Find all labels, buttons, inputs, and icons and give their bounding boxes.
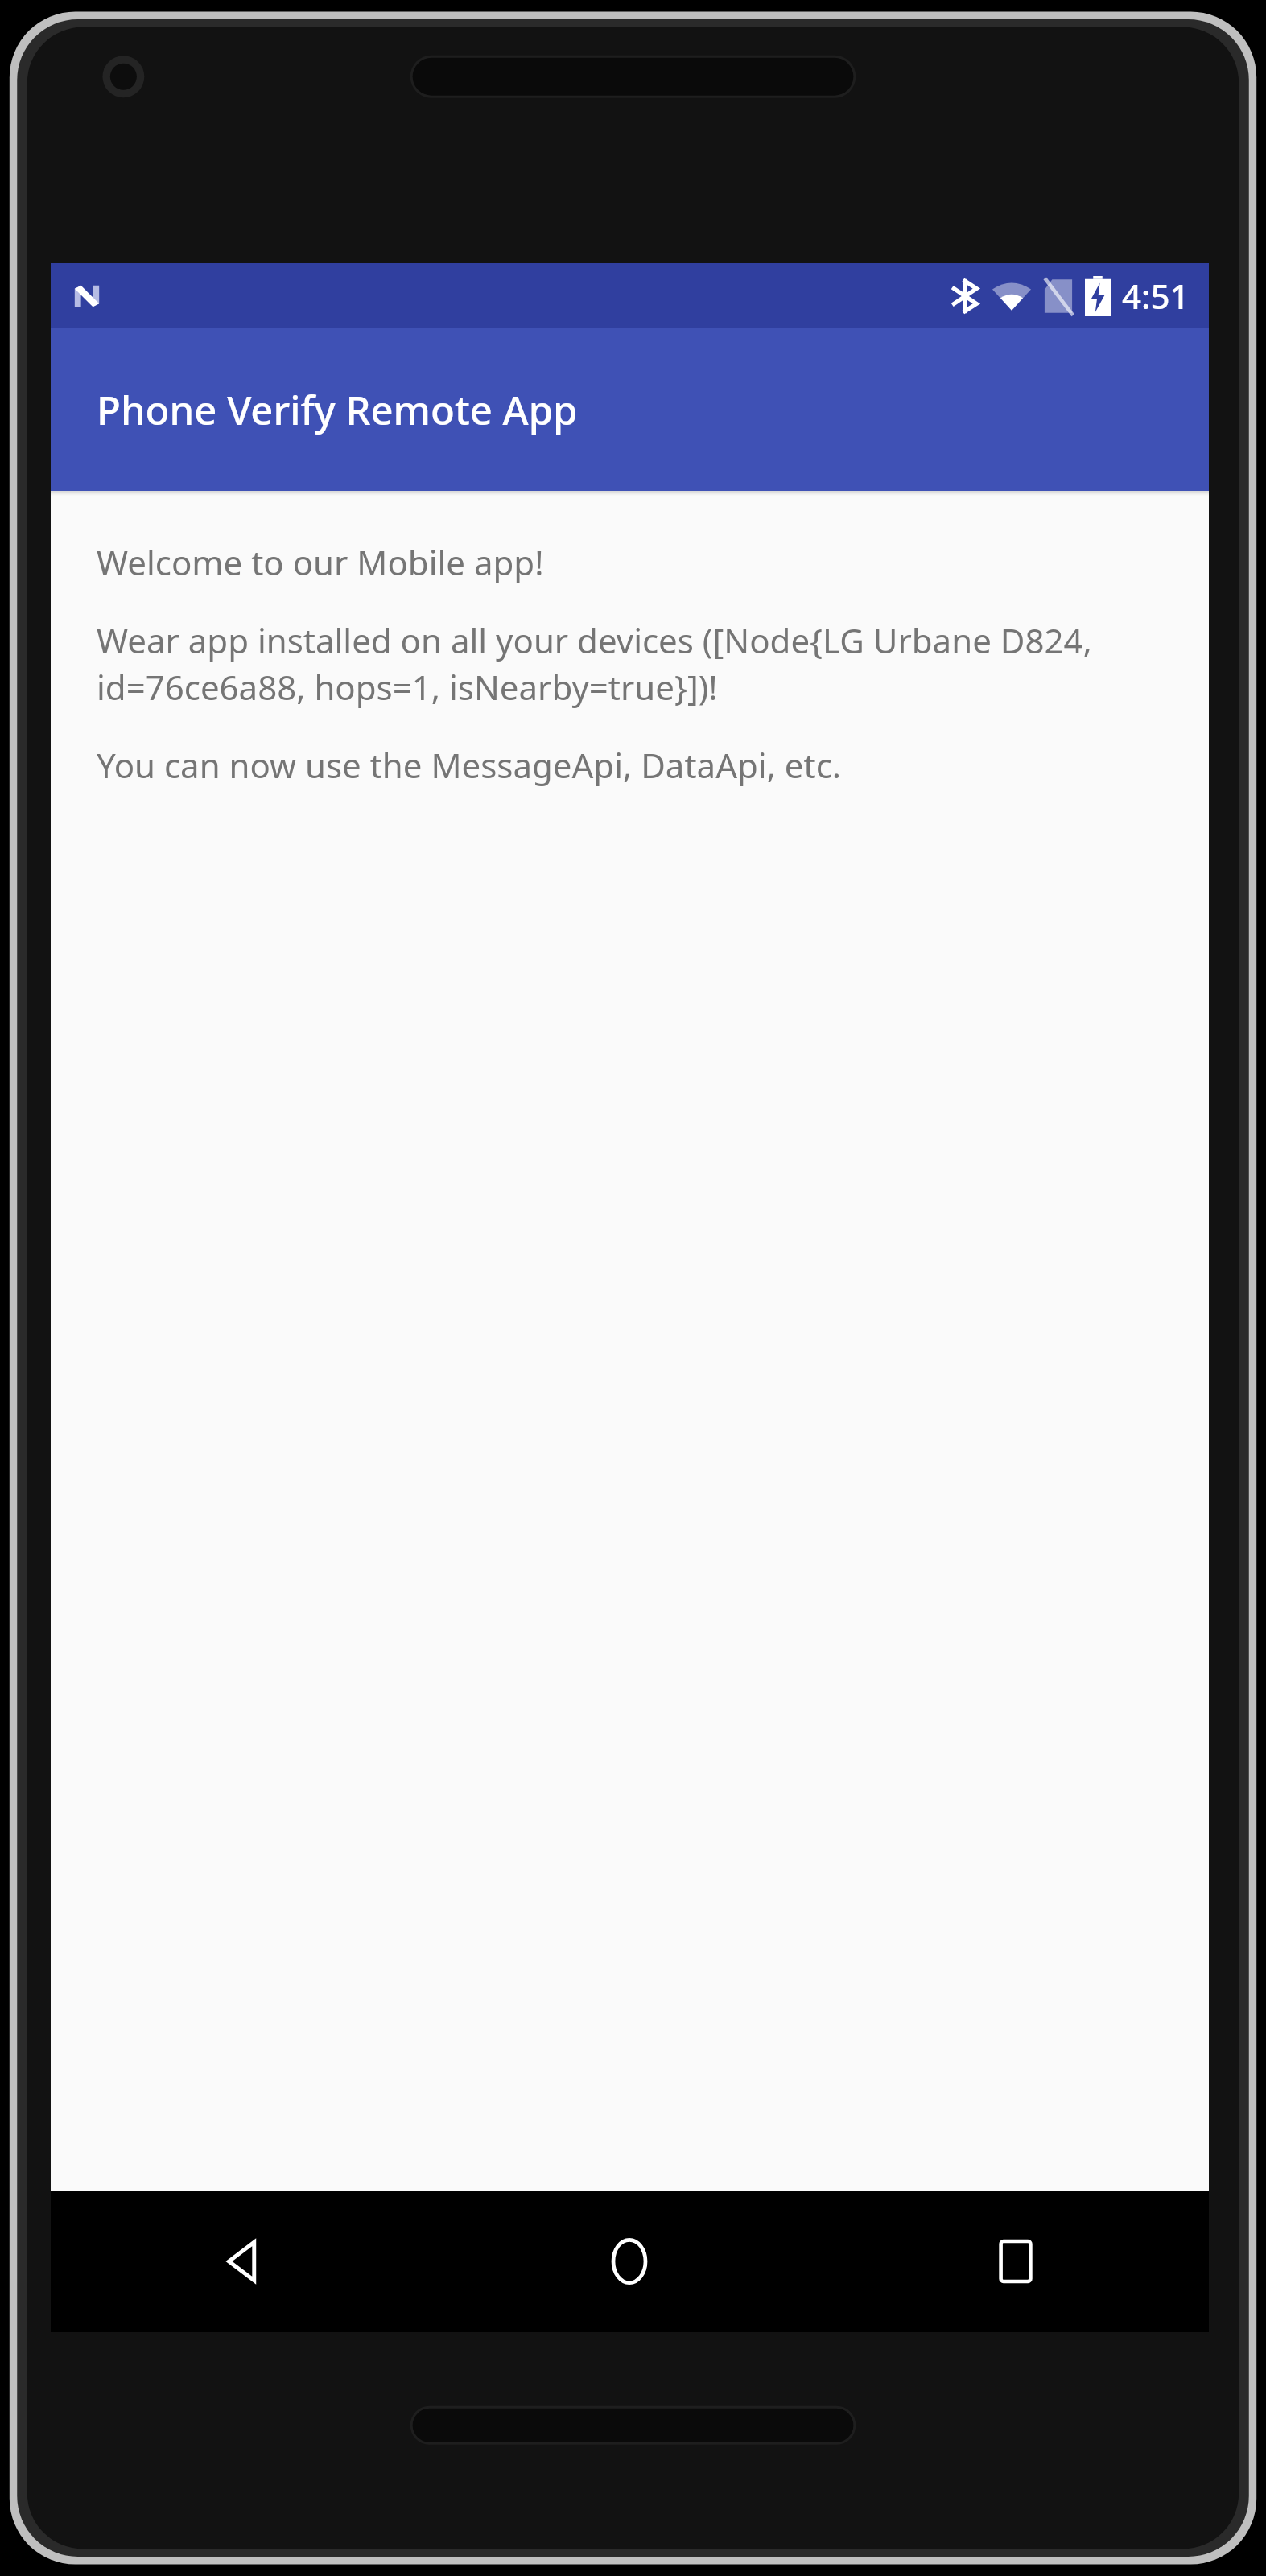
staticText: Phone Verify Remote App [97, 383, 578, 437]
staticText: 4:51 [1122, 273, 1190, 319]
button[interactable]: Home [436, 2191, 823, 2332]
button[interactable]: Back [51, 2191, 436, 2332]
staticText: Welcome to our Mobile app! [97, 539, 544, 585]
staticText: You can now use the MessageApi, DataApi,… [97, 742, 842, 788]
staticText: Wear app installed on all your devices (… [97, 617, 1173, 710]
button[interactable]: Recent apps [823, 2191, 1209, 2332]
